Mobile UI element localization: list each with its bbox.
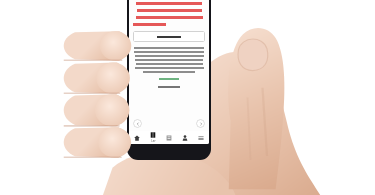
button[interactable] (193, 131, 209, 144)
button[interactable] (133, 31, 205, 42)
staticText: Ler (151, 139, 156, 143)
button[interactable] (177, 131, 193, 144)
button[interactable]: Next chapter (196, 119, 205, 128)
button[interactable] (129, 131, 145, 144)
button[interactable]: Ler (145, 131, 161, 144)
button[interactable]: Previous chapter (133, 119, 142, 128)
button[interactable] (161, 131, 177, 144)
